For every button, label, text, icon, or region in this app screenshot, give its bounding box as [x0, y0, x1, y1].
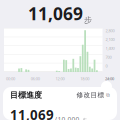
staticText: 11,069 [28, 2, 83, 25]
staticText: 修改目標 [76, 91, 104, 99]
staticText: 24:00 [105, 76, 114, 81]
staticText: ⧉ [106, 92, 110, 98]
staticText: 700 [105, 54, 111, 60]
staticText: /10,000 [54, 115, 79, 120]
staticText: 0 [105, 63, 107, 68]
staticText: 18:00 [80, 76, 89, 81]
staticText: 12:00 [55, 76, 64, 81]
staticText: 2,800 [105, 28, 114, 33]
button[interactable]: 修改目標 [76, 91, 110, 99]
staticText: 步 [80, 117, 87, 120]
staticText: 11,069 [10, 106, 54, 120]
button[interactable]: More [101, 81, 112, 92]
staticText: 步 [84, 15, 92, 25]
staticText: 2,100 [105, 37, 114, 42]
staticText: 06:00 [31, 76, 40, 81]
staticText: 00:00 [6, 76, 15, 81]
staticText: 目標進度 [10, 90, 42, 100]
staticText: 1,400 [105, 46, 114, 51]
